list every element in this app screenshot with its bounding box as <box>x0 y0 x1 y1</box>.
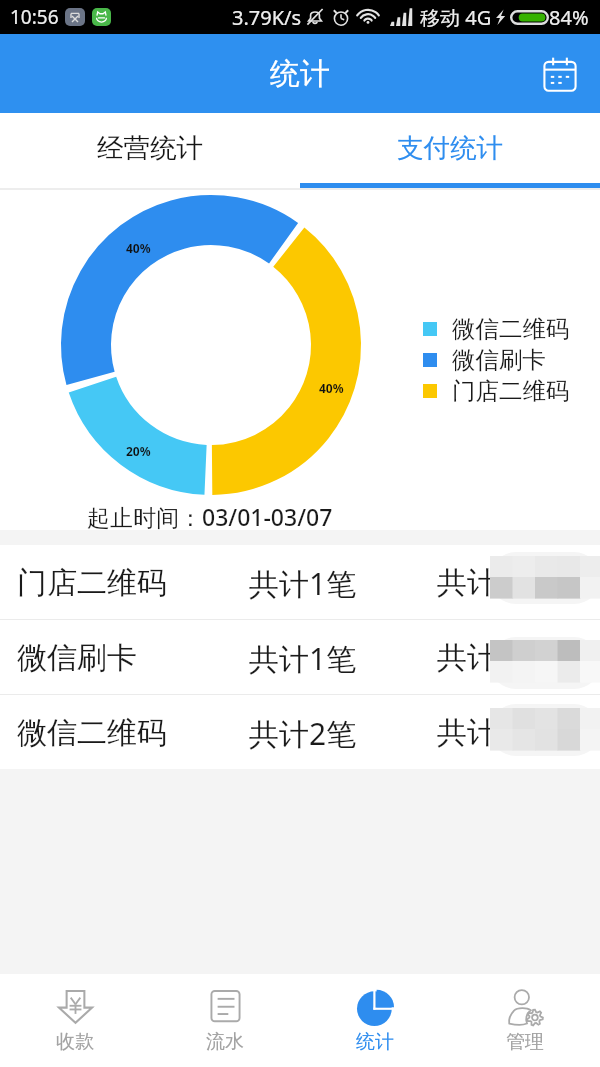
button[interactable]: 微信二维码 <box>0 695 600 769</box>
button[interactable]: 统计 <box>300 974 450 1067</box>
button[interactable]: 支付统计 <box>300 113 600 182</box>
staticText: 3.79K/s <box>232 4 302 31</box>
staticText: 收款 <box>56 1030 94 1054</box>
staticText: 共计1笔 <box>249 638 357 679</box>
staticText: 经营统计 <box>97 131 203 164</box>
staticText: 流水 <box>206 1030 244 1054</box>
staticText: 共计 <box>437 639 497 677</box>
staticText: 微信刷卡 <box>17 639 137 677</box>
staticText: 40% <box>319 380 344 396</box>
staticText: 管理 <box>506 1030 544 1054</box>
button[interactable]: 管理 <box>450 974 600 1067</box>
staticText: 统计 <box>270 55 330 93</box>
staticText: 共计1笔 <box>249 563 357 604</box>
staticText: 共计 <box>437 564 497 602</box>
staticText: 10:56 <box>10 4 59 30</box>
staticText: 共计2笔 <box>249 713 357 754</box>
button[interactable]: 微信刷卡 <box>0 620 600 694</box>
button[interactable]: 门店二维码 <box>0 545 600 619</box>
button[interactable]: 流水 <box>150 974 300 1067</box>
staticText: 移动 4G <box>420 4 492 31</box>
staticText: 微信刷卡 <box>452 345 546 375</box>
staticText: 起止时间：03/01-03/07 <box>87 501 333 532</box>
button[interactable]: 收款 <box>0 974 150 1067</box>
button[interactable]: Calendar <box>520 34 600 113</box>
staticText: 微信二维码 <box>452 314 570 344</box>
staticText: 门店二维码 <box>17 564 167 602</box>
staticText: 门店二维码 <box>452 376 570 406</box>
staticText: 20% <box>126 443 151 459</box>
staticText: 共计 <box>437 714 497 752</box>
staticText: 支付统计 <box>397 131 503 164</box>
button[interactable]: 经营统计 <box>0 113 300 182</box>
staticText: 40% <box>126 240 151 256</box>
staticText: 84% <box>549 4 589 31</box>
staticText: 统计 <box>356 1030 394 1054</box>
staticText: 微信二维码 <box>17 714 167 752</box>
